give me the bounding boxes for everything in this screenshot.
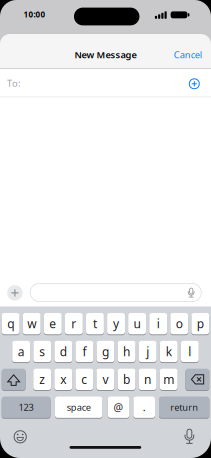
staticText: .: [143, 400, 146, 414]
button[interactable]: space: [55, 396, 102, 418]
staticText: m: [163, 371, 174, 387]
staticText: i: [157, 316, 160, 332]
staticText: t: [93, 316, 97, 332]
staticText: x: [60, 371, 66, 387]
button[interactable]: v: [96, 368, 114, 390]
staticText: h: [123, 343, 130, 359]
button[interactable]: p: [191, 312, 209, 335]
button[interactable]: w: [23, 312, 41, 335]
button[interactable]: return: [159, 396, 209, 418]
button[interactable]: .: [133, 396, 155, 418]
staticText: z: [39, 371, 45, 387]
button[interactable]: Add Contact: [188, 78, 200, 90]
staticText: d: [60, 343, 67, 359]
staticText: v: [102, 371, 108, 387]
button[interactable]: i: [149, 312, 167, 335]
staticText: y: [113, 316, 119, 332]
staticText: u: [134, 316, 141, 332]
staticText: @: [114, 400, 124, 414]
button[interactable]: z: [33, 368, 51, 390]
button[interactable]: o: [170, 312, 188, 335]
staticText: return: [170, 401, 198, 413]
staticText: e: [49, 316, 56, 332]
staticText: n: [144, 371, 151, 387]
staticText: b: [123, 371, 130, 387]
staticText: s: [39, 343, 45, 359]
button[interactable]: r: [65, 312, 83, 335]
button[interactable]: Emoji: [12, 429, 28, 445]
staticText: f: [82, 343, 86, 359]
button[interactable]: f: [75, 340, 93, 363]
button[interactable]: d: [54, 340, 72, 363]
button[interactable]: e: [44, 312, 62, 335]
button[interactable]: 123: [2, 396, 50, 418]
button[interactable]: g: [97, 340, 114, 363]
button[interactable]: b: [118, 368, 135, 390]
button[interactable]: u: [128, 312, 146, 335]
staticText: k: [166, 343, 172, 359]
staticText: j: [146, 343, 149, 359]
button[interactable]: Dictate: [185, 287, 197, 299]
button[interactable]: @: [108, 396, 129, 418]
button[interactable]: m: [160, 368, 178, 390]
button[interactable]: Add Attachment: [7, 285, 23, 301]
button[interactable]: a: [12, 340, 30, 363]
staticText: l: [188, 343, 191, 359]
button[interactable]: Shift: [2, 368, 26, 390]
button[interactable]: s: [33, 340, 51, 363]
button[interactable]: q: [2, 312, 20, 335]
staticText: New Message: [74, 48, 136, 61]
staticText: To:: [7, 77, 21, 89]
button[interactable]: t: [86, 312, 104, 335]
staticText: r: [71, 316, 76, 332]
staticText: a: [18, 343, 25, 359]
button[interactable]: x: [54, 368, 72, 390]
button[interactable]: l: [181, 340, 199, 363]
button[interactable]: h: [118, 340, 135, 363]
staticText: space: [67, 401, 91, 413]
button[interactable]: y: [107, 312, 125, 335]
button[interactable]: n: [139, 368, 157, 390]
button[interactable]: Dictation: [181, 428, 197, 445]
staticText: w: [27, 316, 36, 332]
button[interactable]: c: [75, 368, 93, 390]
staticText: 123: [19, 401, 34, 413]
button[interactable]: Delete: [185, 368, 209, 390]
button[interactable]: k: [160, 340, 178, 363]
staticText: q: [7, 316, 14, 332]
staticText: g: [102, 343, 109, 359]
staticText: c: [81, 371, 87, 387]
staticText: p: [197, 316, 204, 332]
button[interactable]: Cancel: [171, 47, 205, 63]
staticText: Cancel: [174, 48, 202, 61]
button[interactable]: j: [139, 340, 157, 363]
staticText: 10:00: [23, 9, 45, 20]
staticText: o: [176, 316, 183, 332]
